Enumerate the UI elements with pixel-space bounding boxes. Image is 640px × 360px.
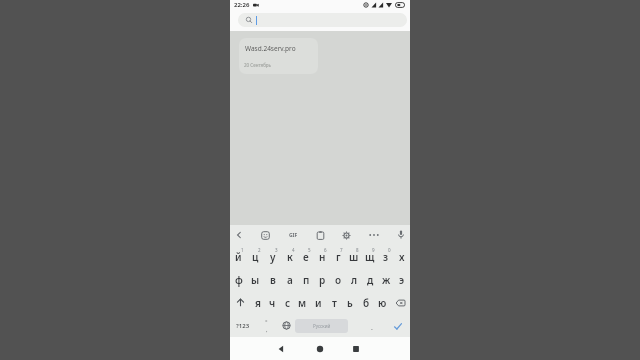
staticText: б [363, 296, 370, 310]
staticText: з [383, 250, 389, 264]
button[interactable]: б [358, 291, 374, 314]
staticText: а [287, 273, 293, 287]
staticText: 0 [388, 247, 391, 253]
staticText: г [336, 250, 341, 264]
staticText: м [298, 296, 307, 310]
staticText: , [266, 326, 268, 334]
button[interactable] [390, 291, 410, 314]
staticText: 7 [340, 247, 343, 253]
staticText: . [371, 323, 373, 333]
staticText: т [332, 296, 337, 310]
staticText: и [315, 296, 322, 310]
staticText: е [303, 250, 309, 264]
button[interactable]: э [394, 268, 410, 291]
button[interactable] [230, 291, 250, 314]
button[interactable]: у [264, 245, 281, 268]
staticText: 5 [308, 247, 311, 253]
button[interactable]: д [362, 268, 378, 291]
staticText: ф [235, 273, 243, 287]
button[interactable] [232, 225, 246, 245]
staticText: ю [378, 296, 387, 310]
button[interactable]: ж [378, 268, 394, 291]
button[interactable]: п [298, 268, 314, 291]
staticText: х [399, 250, 405, 264]
staticText: ж [382, 273, 391, 287]
staticText: о [335, 273, 342, 287]
button[interactable] [339, 225, 353, 245]
button[interactable] [366, 225, 382, 245]
button[interactable]: ы [247, 268, 264, 291]
button[interactable] [271, 339, 291, 359]
staticText: 3 [275, 247, 278, 253]
staticText: у [270, 250, 276, 264]
staticText: Русский [313, 323, 331, 329]
staticText: п [303, 273, 310, 287]
button[interactable] [277, 314, 295, 337]
button[interactable]: ф [230, 268, 247, 291]
button[interactable] [385, 314, 410, 337]
button[interactable]: г [330, 245, 346, 268]
staticText: 2 [258, 247, 261, 253]
button[interactable]: ю [374, 291, 390, 314]
staticText: я [255, 296, 261, 310]
staticText: 22:26 [234, 1, 250, 9]
button[interactable]: л [346, 268, 362, 291]
button[interactable]: р [314, 268, 330, 291]
staticText: в [270, 273, 276, 287]
staticText: д [367, 273, 374, 287]
button[interactable]: ?123 [230, 314, 255, 337]
button[interactable]: н [314, 245, 330, 268]
staticText: ° [265, 318, 268, 326]
button[interactable]: й [230, 245, 247, 268]
button[interactable]: м [295, 291, 310, 314]
staticText: й [235, 250, 242, 264]
staticText: н [319, 250, 326, 264]
staticText: ?123 [236, 322, 250, 330]
button[interactable] [346, 339, 366, 359]
button[interactable]: к [281, 245, 298, 268]
button[interactable] [258, 225, 272, 245]
staticText: 6 [324, 247, 327, 253]
staticText: щ [365, 250, 375, 264]
button[interactable]: ш [346, 245, 362, 268]
button[interactable]: ч [265, 291, 280, 314]
staticText: р [319, 273, 326, 287]
button[interactable]: е [298, 245, 314, 268]
staticText: 20 Сентябрь [244, 62, 272, 68]
button[interactable] [394, 225, 408, 245]
button[interactable]: о [330, 268, 346, 291]
button[interactable]: з [378, 245, 394, 268]
staticText: ч [269, 296, 276, 310]
button[interactable] [238, 13, 407, 27]
staticText: 1 [241, 247, 244, 253]
button[interactable] [310, 339, 330, 359]
staticText: ц [252, 250, 259, 264]
staticText: 9 [372, 247, 375, 253]
button[interactable]: ц [247, 245, 264, 268]
button[interactable]: щ [362, 245, 378, 268]
button[interactable]: GIF [285, 225, 301, 245]
button[interactable]: ь [342, 291, 358, 314]
button[interactable]: я [250, 291, 265, 314]
staticText: GIF [289, 232, 298, 239]
staticText: ь [347, 296, 353, 310]
button[interactable]: Русский [295, 314, 348, 337]
button[interactable]: и [310, 291, 326, 314]
staticText: с [285, 296, 291, 310]
staticText: к [287, 250, 293, 264]
button[interactable]: а [281, 268, 298, 291]
button[interactable]: с [280, 291, 295, 314]
button[interactable]: т [326, 291, 342, 314]
staticText: л [351, 273, 358, 287]
button[interactable]: ° [255, 314, 277, 337]
staticText: ш [349, 250, 359, 264]
button[interactable]: Wasd.24serv.pro [239, 38, 318, 74]
staticText: 8 [356, 247, 359, 253]
button[interactable]: в [264, 268, 281, 291]
staticText: 4 [292, 247, 295, 253]
button[interactable] [313, 225, 327, 245]
staticText: э [399, 273, 405, 287]
staticText: ы [251, 273, 260, 287]
button[interactable]: х [394, 245, 410, 268]
